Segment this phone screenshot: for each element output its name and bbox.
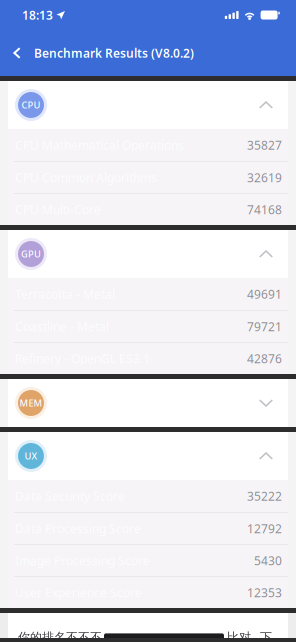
staticText: 42876 (247, 350, 282, 366)
staticText: 49691 (247, 286, 282, 302)
staticText: 74168 (247, 201, 282, 217)
button[interactable]: UX (8, 432, 288, 480)
staticText: GPU (21, 248, 41, 260)
button[interactable]: GPU (8, 230, 288, 278)
staticText: 18:13 (22, 7, 53, 23)
staticText: CPU (21, 99, 40, 111)
staticText: 79721 (247, 318, 282, 334)
staticText: MEM (19, 397, 42, 409)
staticText: 12353 (247, 584, 282, 600)
staticText: 你的排名不不不 (18, 630, 102, 642)
staticText: 35827 (247, 137, 282, 153)
staticText: Benchmark Results (V8.0.2) (34, 45, 194, 61)
button[interactable]: MEM (8, 379, 288, 427)
staticText: UX (24, 450, 37, 462)
staticText: 35222 (247, 488, 282, 504)
staticText: 比对 (227, 630, 251, 642)
button[interactable]: Back (0, 30, 34, 76)
button[interactable]: CPU (8, 81, 288, 129)
staticText: 5430 (254, 552, 282, 568)
staticText: 下 (260, 630, 272, 642)
staticText: 12792 (247, 520, 282, 536)
staticText: 32619 (247, 169, 282, 185)
